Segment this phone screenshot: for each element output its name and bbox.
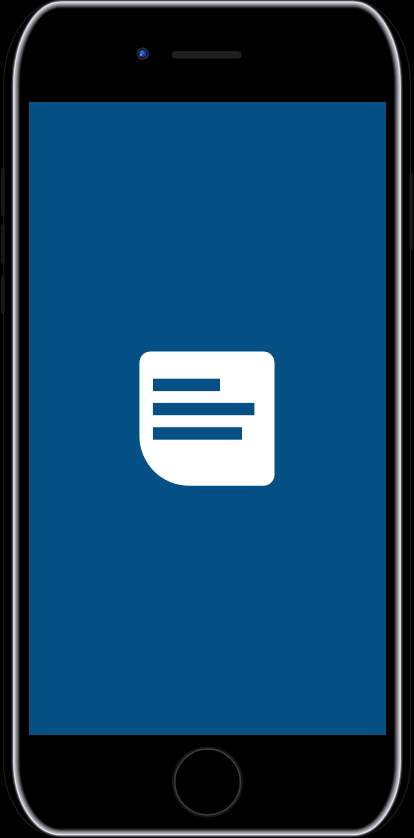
button[interactable]: App splash logo — [0, 0, 414, 838]
